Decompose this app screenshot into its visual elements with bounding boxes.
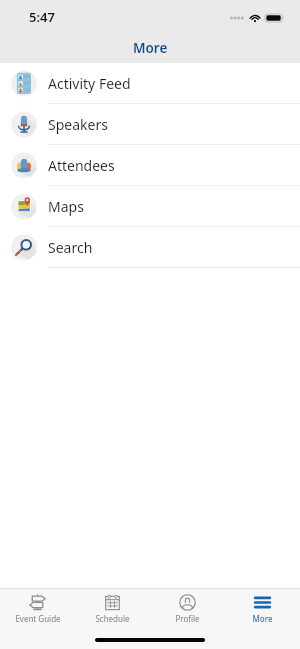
button[interactable]: Profile (150, 589, 225, 624)
staticText: Attendees (48, 156, 115, 175)
button[interactable]: Search (0, 227, 300, 268)
button[interactable]: Speakers (0, 104, 300, 145)
other: Schedule (104, 594, 121, 611)
staticText: More (133, 39, 168, 57)
staticText: Maps (48, 197, 84, 216)
staticText: Speakers (48, 115, 108, 134)
button[interactable]: Activity Feed (0, 63, 300, 104)
other: Event Guide (29, 594, 46, 611)
other: More (254, 594, 271, 611)
button[interactable]: More (225, 589, 300, 624)
button[interactable]: Schedule (75, 589, 150, 624)
staticText: Profile (175, 613, 200, 624)
staticText: Event Guide (15, 613, 61, 624)
staticText: 5:47 (29, 8, 55, 26)
staticText: Schedule (95, 613, 130, 624)
staticText: Search (48, 238, 93, 257)
staticText: Activity Feed (48, 74, 131, 93)
other: Profile (179, 594, 196, 611)
button[interactable]: Event Guide (0, 589, 75, 624)
staticText: More (252, 613, 273, 624)
button[interactable]: Attendees (0, 145, 300, 186)
button[interactable]: Maps (0, 186, 300, 227)
